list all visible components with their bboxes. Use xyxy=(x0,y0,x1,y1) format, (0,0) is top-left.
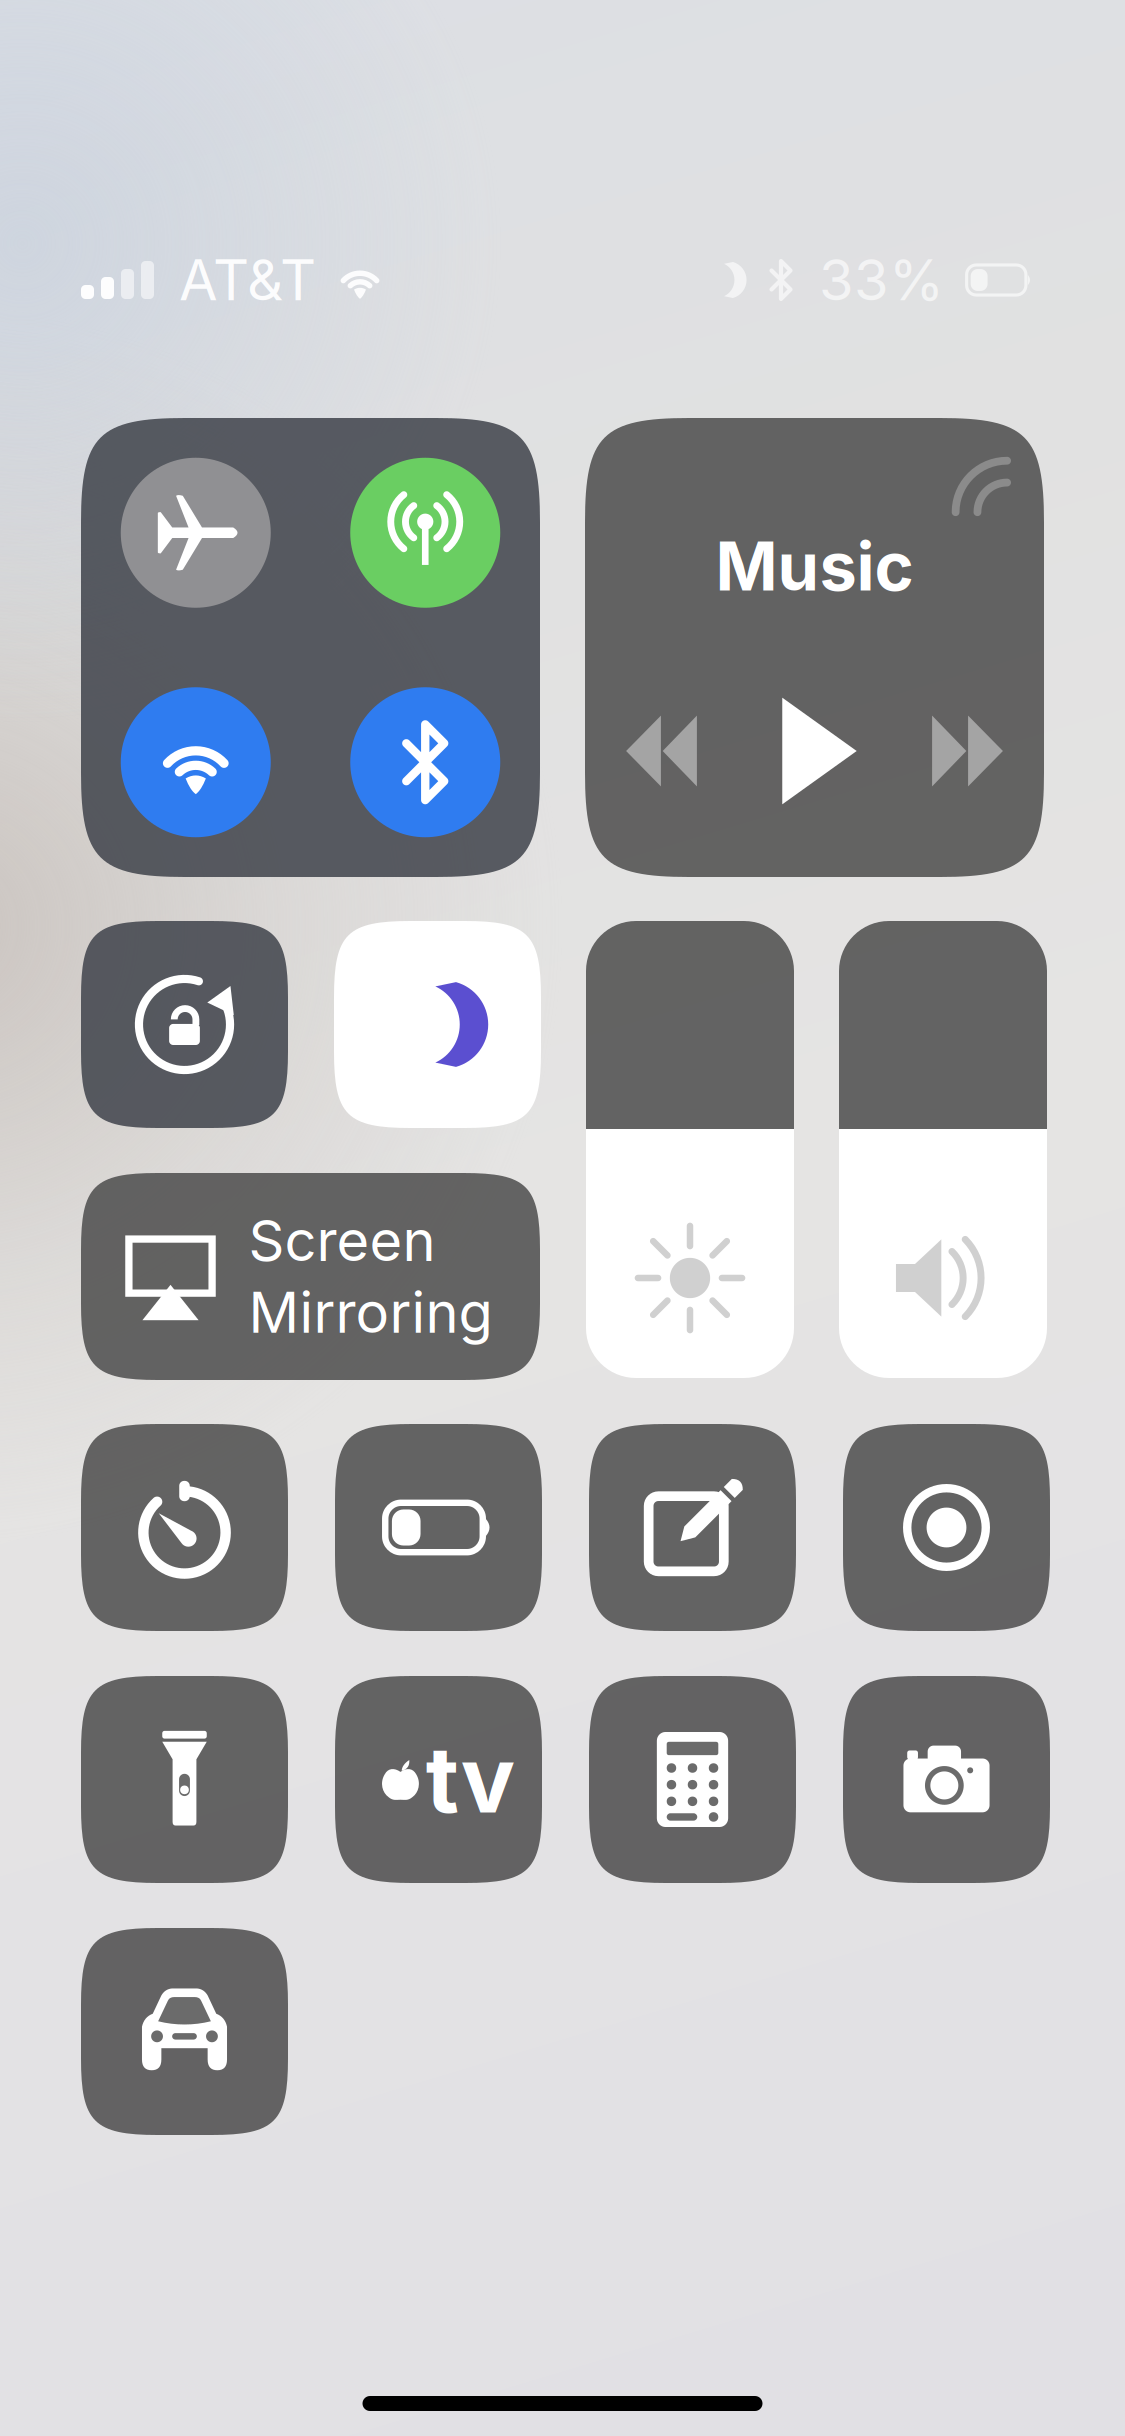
button[interactable] xyxy=(589,1676,796,1883)
staticText: Music xyxy=(715,526,913,607)
button[interactable] xyxy=(81,1676,288,1883)
button[interactable] xyxy=(843,1424,1050,1631)
button[interactable] xyxy=(81,921,288,1128)
button[interactable]: tv xyxy=(335,1676,542,1883)
button[interactable]: Airplane Mode xyxy=(81,418,310,647)
button[interactable] xyxy=(589,1424,796,1631)
button[interactable]: Play xyxy=(738,681,891,821)
button[interactable]: AirPlay xyxy=(940,418,1044,520)
button[interactable] xyxy=(81,1928,288,2135)
staticText: AT&T xyxy=(179,246,316,314)
button[interactable] xyxy=(843,1676,1050,1883)
button[interactable]: Wi-Fi xyxy=(81,647,310,877)
button[interactable]: Rewind xyxy=(585,681,738,821)
button[interactable] xyxy=(334,921,541,1128)
staticText: Mirroring xyxy=(248,1278,492,1346)
button[interactable]: Bluetooth xyxy=(310,647,540,877)
button[interactable]: Volume xyxy=(839,921,1047,1378)
button[interactable]: Screen Mirroring xyxy=(81,1173,540,1380)
button[interactable]: Fast Forward xyxy=(891,681,1044,821)
staticText: Screen xyxy=(248,1207,435,1274)
button[interactable]: Cellular Data xyxy=(310,418,540,647)
button[interactable] xyxy=(81,1424,288,1631)
staticText: 33% xyxy=(819,246,944,314)
button[interactable]: Brightness xyxy=(586,921,794,1378)
staticText: tv xyxy=(426,1725,517,1834)
button[interactable] xyxy=(335,1424,542,1631)
